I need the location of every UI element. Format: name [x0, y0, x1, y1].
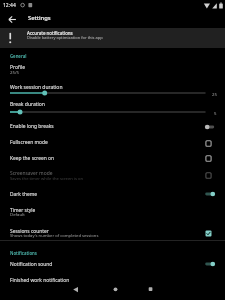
staticText: Keep the screen on [10, 155, 55, 162]
staticText: Shows today's number of completed sessio… [10, 233, 99, 239]
button[interactable]: Notification sound [0, 258, 225, 271]
button[interactable]: Keep the screen on [0, 151, 225, 166]
button[interactable]: Screensaver mode [0, 166, 225, 185]
button[interactable]: Break duration [0, 98, 225, 117]
staticText: Break duration [10, 101, 45, 108]
staticText: Sessions counter [10, 228, 49, 235]
staticText: Timer style [10, 207, 36, 214]
staticText: 5 [214, 110, 217, 116]
staticText: Screensaver mode [10, 170, 53, 177]
button[interactable] [5, 13, 20, 26]
staticText: Notifications [10, 250, 37, 256]
button[interactable]: Timer style [0, 203, 225, 217]
staticText: Work session duration [10, 84, 63, 91]
staticText: Profile [10, 64, 26, 71]
button[interactable] [109, 283, 122, 296]
staticText: Saves the timer while the screen is on [10, 176, 84, 182]
button[interactable]: Accurate notifications [0, 28, 225, 48]
staticText: Accurate notifications [27, 30, 73, 36]
button[interactable]: Enable long breaks [0, 119, 225, 134]
staticText: General [10, 53, 27, 59]
staticText: 25/5 [10, 69, 19, 75]
staticText: Notification sound [10, 261, 53, 268]
staticText: Finished work notification [10, 277, 70, 284]
button[interactable]: Fullscreen mode [0, 135, 225, 150]
staticText: Disable battery optimization for this ap… [27, 35, 103, 40]
staticText: Enable long breaks [10, 123, 54, 130]
staticText: 25 [212, 91, 217, 97]
staticText: Dark theme [10, 191, 38, 198]
staticText: Fullscreen mode [10, 139, 48, 146]
button[interactable]: Work session duration [0, 80, 225, 98]
staticText: Settings [28, 14, 51, 22]
button[interactable]: Profile [0, 60, 225, 77]
button[interactable]: Dark theme [0, 188, 225, 202]
button[interactable]: Sessions counter [0, 224, 225, 239]
button[interactable]: Finished work notification [0, 273, 225, 286]
button[interactable] [69, 283, 82, 296]
button[interactable] [144, 283, 157, 296]
staticText: 12:44 [3, 2, 16, 9]
staticText: Default [10, 211, 25, 217]
